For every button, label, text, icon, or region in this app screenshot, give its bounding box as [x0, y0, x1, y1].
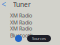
staticText: Tuner [13, 0, 31, 9]
button[interactable]: Sources [27, 35, 51, 42]
staticText: Bluetooth [10, 32, 33, 39]
staticText: XM Radio [10, 25, 32, 32]
staticText: < [1, 0, 6, 10]
button[interactable]: Back [1, 0, 7, 9]
staticText: XM Radio [10, 19, 32, 26]
staticText: Sources [32, 36, 46, 41]
staticText: XM Radio [10, 12, 32, 19]
button[interactable]: Power [15, 35, 22, 42]
